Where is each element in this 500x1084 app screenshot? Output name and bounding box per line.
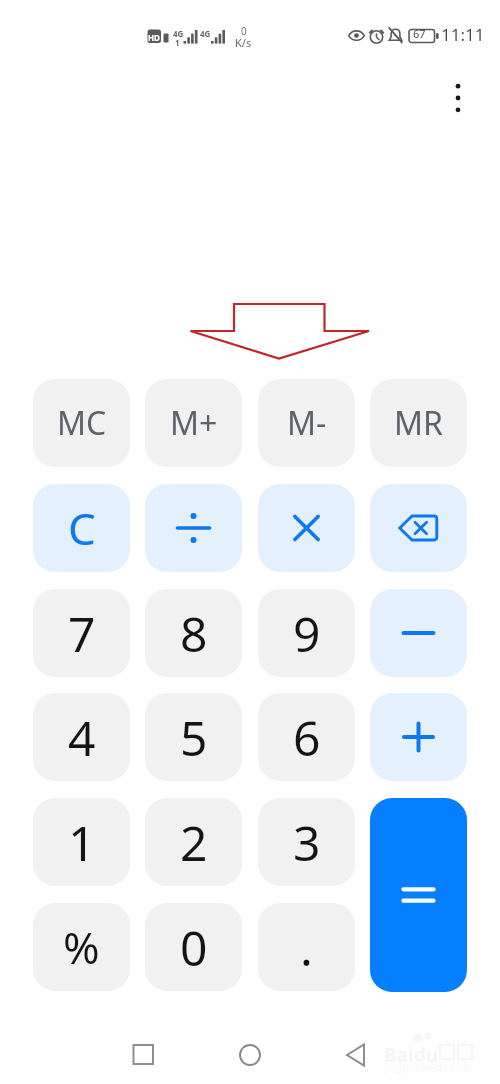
button[interactable]: Delete (370, 484, 467, 572)
staticText: % (63, 917, 100, 977)
staticText: 3 (293, 810, 321, 875)
button[interactable]: Recent apps (119, 1031, 167, 1079)
button[interactable]: M+ (145, 379, 242, 467)
button[interactable]: Equals (370, 798, 467, 992)
button[interactable]: 7 (33, 589, 130, 677)
staticText: K/s (235, 35, 252, 50)
staticText: 11:11 (441, 23, 485, 46)
button[interactable]: 6 (258, 693, 355, 781)
button[interactable]: More options (434, 74, 482, 122)
staticText: 5 (180, 705, 208, 770)
button[interactable]: M- (258, 379, 355, 467)
staticText: 8 (180, 601, 208, 666)
button[interactable]: Home (226, 1031, 274, 1079)
button[interactable]: 3 (258, 798, 355, 886)
staticText: jingyan.baidu.com (384, 1060, 471, 1074)
staticText: M+ (170, 401, 218, 445)
button[interactable]: 5 (145, 693, 242, 781)
button[interactable]: Minus (370, 589, 467, 677)
button[interactable]: . (258, 903, 355, 991)
staticText: C (68, 498, 96, 558)
staticText: MC (57, 401, 107, 445)
staticText: 67 (413, 26, 426, 41)
staticText: 0 (241, 24, 247, 38)
button[interactable]: 1 (33, 798, 130, 886)
button[interactable]: Divide (145, 484, 242, 572)
staticText: M- (287, 401, 327, 445)
button[interactable]: % (33, 903, 130, 991)
staticText: 2 (180, 810, 208, 875)
button[interactable]: MR (370, 379, 467, 467)
button[interactable]: 4 (33, 693, 130, 781)
staticText: MR (394, 401, 443, 445)
staticText: 1 (175, 37, 180, 48)
staticText: 4G (200, 28, 211, 39)
button[interactable]: Plus (370, 693, 467, 781)
staticText: 9 (293, 601, 321, 666)
button[interactable]: 0 (145, 903, 242, 991)
staticText: HD (148, 32, 160, 43)
staticText: 1 (68, 810, 96, 875)
button[interactable]: C (33, 484, 130, 572)
staticText: 0 (180, 915, 208, 980)
button[interactable]: 2 (145, 798, 242, 886)
staticText: . (300, 915, 313, 980)
staticText: Baidu (384, 1042, 439, 1068)
button[interactable]: Back (332, 1031, 380, 1079)
button[interactable]: 8 (145, 589, 242, 677)
staticText: 4G (173, 28, 184, 39)
button[interactable]: Multiply (258, 484, 355, 572)
button[interactable]: 9 (258, 589, 355, 677)
staticText: 4 (68, 705, 96, 770)
button[interactable]: MC (33, 379, 130, 467)
staticText: 7 (68, 601, 96, 666)
staticText: 6 (293, 705, 321, 770)
